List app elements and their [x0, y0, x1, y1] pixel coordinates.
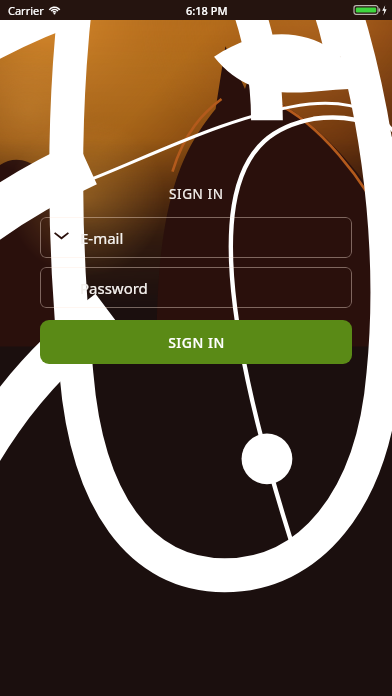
- button[interactable]: E-mail: [40, 217, 352, 258]
- staticText: SIGN IN: [168, 333, 225, 352]
- staticText: E-mail: [80, 228, 124, 248]
- button[interactable]: SIGN IN: [40, 320, 352, 364]
- staticText: Password: [80, 278, 148, 298]
- button[interactable]: Password: [40, 267, 352, 308]
- staticText: SIGN IN: [169, 185, 224, 203]
- staticText: Carrier: [8, 3, 44, 18]
- staticText: 6:18 PM: [186, 3, 228, 18]
